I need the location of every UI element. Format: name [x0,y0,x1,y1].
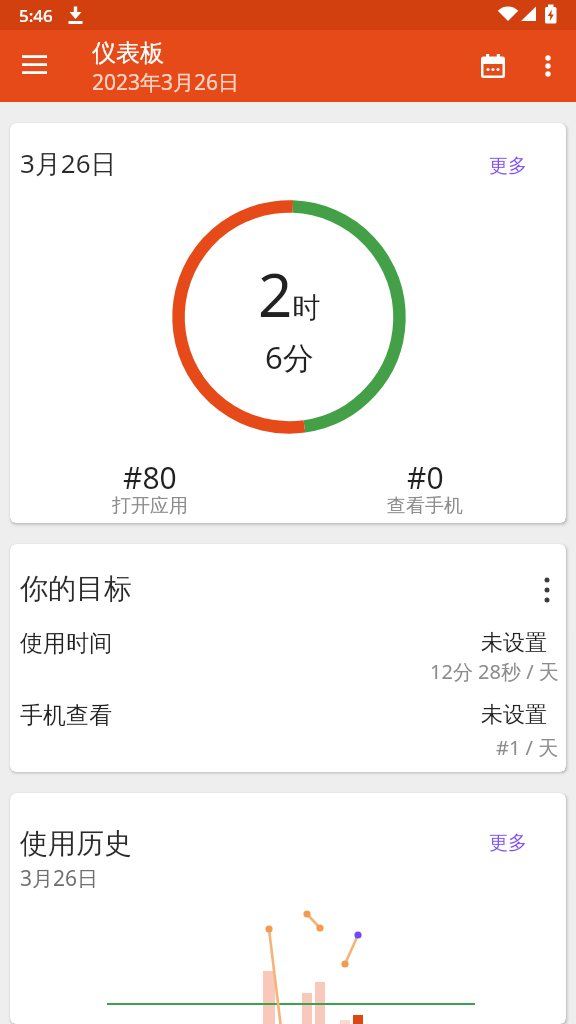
button[interactable] [524,42,572,90]
staticText: 你的目标 [20,571,132,606]
staticText: 未设置 [481,629,547,657]
staticText: #80 [123,457,177,498]
staticText: 使用时间 [20,629,112,658]
button[interactable] [10,624,566,688]
staticText: 6分 [265,336,314,378]
staticText: 打开应用 [112,494,188,518]
staticText: 3月26日 [20,864,99,893]
button[interactable] [10,40,58,88]
staticText: 仪表板 [92,38,164,68]
staticText: 5:46 [19,4,53,27]
staticText: 使用历史 [20,826,132,861]
staticText: #0 [407,457,444,498]
button[interactable] [527,570,566,610]
staticText: 更多 [489,831,527,855]
button[interactable] [10,694,566,758]
staticText: #1 / 天 [496,734,559,761]
staticText: 查看手机 [387,494,463,518]
staticText: 2时 [258,253,321,335]
button[interactable]: 更多 [187,811,527,875]
staticText: 3月26日 [20,145,117,181]
staticText: 手机查看 [20,701,112,730]
staticText: 2023年3月26日 [92,68,240,97]
staticText: 未设置 [481,701,547,729]
button[interactable]: 更多 [187,134,527,198]
button[interactable] [469,42,517,90]
staticText: 更多 [489,154,527,178]
staticText: 12分 28秒 / 天 [430,658,559,685]
